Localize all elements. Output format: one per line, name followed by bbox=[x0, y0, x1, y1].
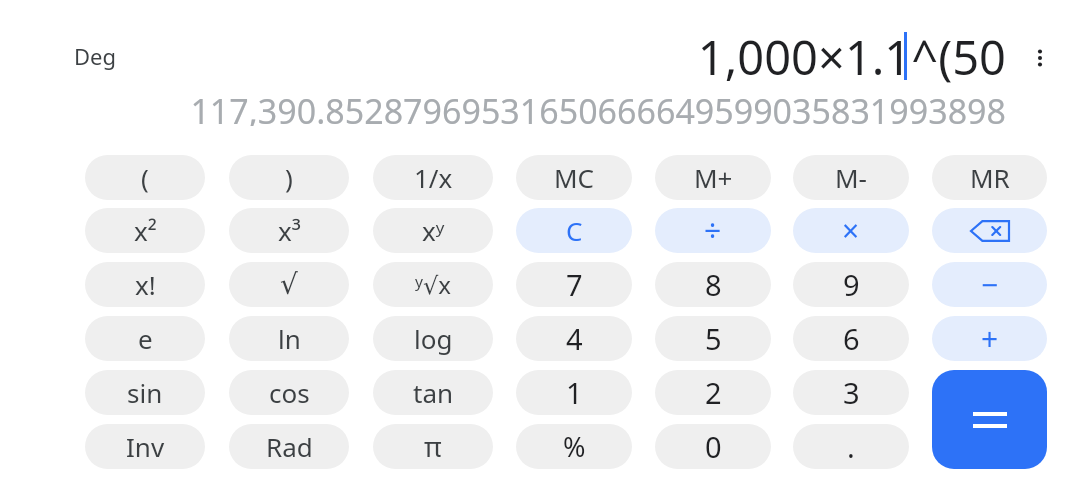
button[interactable]: ( bbox=[85, 155, 205, 200]
button[interactable]: 1 bbox=[516, 370, 632, 415]
button[interactable]: ) bbox=[229, 155, 349, 200]
staticText: 8 bbox=[705, 265, 722, 304]
button[interactable]: − bbox=[932, 262, 1047, 307]
staticText: x! bbox=[135, 267, 156, 302]
staticText: xʸ bbox=[422, 213, 445, 248]
staticText: M- bbox=[835, 160, 867, 195]
staticText: 5 bbox=[705, 319, 722, 358]
button[interactable]: 1/x bbox=[373, 155, 493, 200]
staticText: ( bbox=[141, 160, 149, 195]
staticText: x² bbox=[134, 213, 157, 248]
staticText: . bbox=[847, 427, 855, 466]
staticText: log bbox=[414, 321, 453, 356]
button[interactable]: e bbox=[85, 316, 205, 361]
button[interactable]: xʸ bbox=[373, 208, 493, 253]
staticText: 6 bbox=[843, 319, 860, 358]
button[interactable]: Deg bbox=[74, 36, 144, 76]
staticText: % bbox=[563, 428, 586, 465]
staticText: cos bbox=[269, 375, 310, 410]
staticText: ʸ√x bbox=[415, 268, 451, 301]
staticText: MR bbox=[970, 160, 1010, 195]
button[interactable]: Rad bbox=[229, 424, 349, 469]
staticText: sin bbox=[127, 375, 163, 410]
button[interactable]: log bbox=[373, 316, 493, 361]
button[interactable]: 2 bbox=[655, 370, 771, 415]
button[interactable]: Equals bbox=[932, 370, 1047, 469]
button[interactable]: × bbox=[793, 208, 909, 253]
staticText: − bbox=[981, 264, 999, 305]
staticText: e bbox=[138, 321, 153, 356]
button[interactable]: % bbox=[516, 424, 632, 469]
staticText: 1/x bbox=[414, 160, 453, 195]
button[interactable]: Inv bbox=[85, 424, 205, 469]
staticText: ln bbox=[278, 321, 301, 356]
button[interactable]: x! bbox=[85, 262, 205, 307]
staticText: 117,390.85287969531650666649599035831993… bbox=[190, 88, 1006, 126]
button[interactable]: ÷ bbox=[655, 208, 771, 253]
button[interactable]: ln bbox=[229, 316, 349, 361]
button[interactable]: + bbox=[932, 316, 1047, 361]
button[interactable]: 7 bbox=[516, 262, 632, 307]
button[interactable]: More options bbox=[1018, 36, 1062, 80]
staticText: 4 bbox=[566, 319, 583, 358]
button[interactable]: M+ bbox=[655, 155, 771, 200]
button[interactable]: 5 bbox=[655, 316, 771, 361]
staticText: 0 bbox=[705, 427, 722, 466]
button[interactable]: x³ bbox=[229, 208, 349, 253]
staticText: 9 bbox=[843, 265, 860, 304]
button[interactable]: √ bbox=[229, 262, 349, 307]
button[interactable]: 4 bbox=[516, 316, 632, 361]
button[interactable]: 1,000×1.1^(50 bbox=[300, 25, 1006, 87]
button[interactable]: x² bbox=[85, 208, 205, 253]
staticText: + bbox=[981, 318, 999, 359]
staticText: C bbox=[566, 213, 583, 248]
button[interactable]: 0 bbox=[655, 424, 771, 469]
staticText: 7 bbox=[566, 265, 583, 304]
staticText: x³ bbox=[278, 213, 301, 248]
button[interactable]: Backspace bbox=[932, 208, 1047, 253]
staticText: tan bbox=[413, 375, 454, 410]
button[interactable]: M- bbox=[793, 155, 909, 200]
staticText: 2 bbox=[705, 373, 722, 412]
staticText: Inv bbox=[126, 429, 165, 464]
button[interactable]: 3 bbox=[793, 370, 909, 415]
button[interactable]: π bbox=[373, 424, 493, 469]
staticText: Rad bbox=[266, 429, 313, 464]
staticText: M+ bbox=[694, 160, 733, 195]
button[interactable]: C bbox=[516, 208, 632, 253]
staticText: × bbox=[842, 210, 860, 251]
button[interactable]: cos bbox=[229, 370, 349, 415]
staticText: √ bbox=[280, 268, 298, 301]
button[interactable]: MR bbox=[932, 155, 1047, 200]
button[interactable]: 9 bbox=[793, 262, 909, 307]
button[interactable]: 117,390.85287969531650666649599035831993… bbox=[100, 88, 1006, 126]
staticText: 3 bbox=[843, 373, 860, 412]
staticText: MC bbox=[554, 160, 595, 195]
button[interactable]: . bbox=[793, 424, 909, 469]
staticText: π bbox=[424, 428, 442, 465]
button[interactable]: 6 bbox=[793, 316, 909, 361]
button[interactable]: 8 bbox=[655, 262, 771, 307]
staticText: Deg bbox=[74, 41, 116, 71]
button[interactable]: tan bbox=[373, 370, 493, 415]
staticText: ÷ bbox=[704, 210, 722, 251]
staticText: 1,000×1.1^(50 bbox=[697, 25, 1006, 87]
staticText: 1 bbox=[566, 373, 583, 412]
staticText: ) bbox=[285, 160, 293, 195]
button[interactable]: MC bbox=[516, 155, 632, 200]
button[interactable]: ʸ√x bbox=[373, 262, 493, 307]
button[interactable]: sin bbox=[85, 370, 205, 415]
